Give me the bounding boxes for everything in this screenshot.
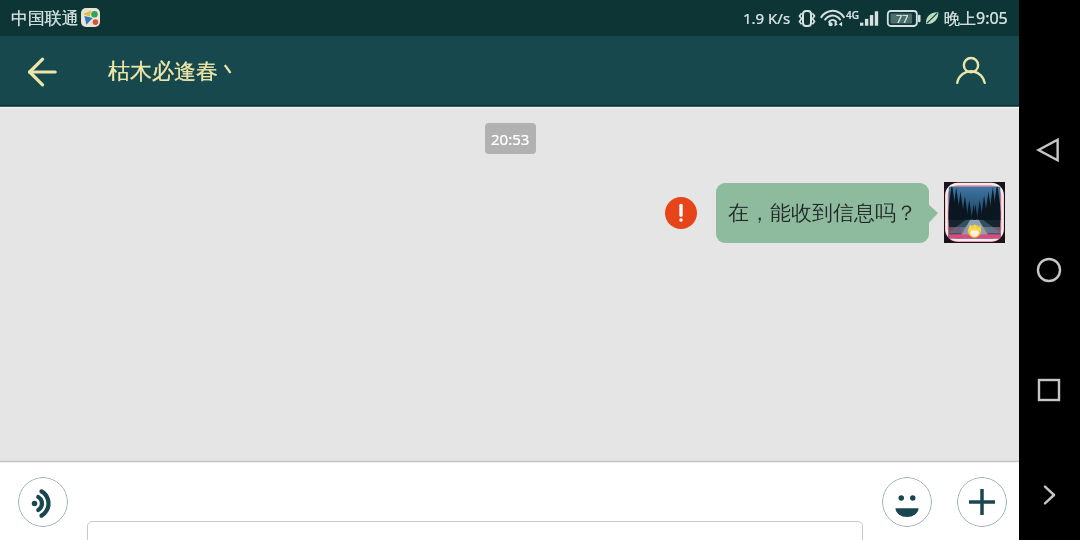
button[interactable]: Back [1027, 128, 1071, 172]
button[interactable]: Back [8, 36, 76, 107]
button[interactable]: Emoji [882, 477, 932, 527]
staticText: 枯木必逢春丶 [108, 58, 240, 86]
button[interactable]: Voice message [18, 477, 68, 527]
staticText: 晚上9:05 [944, 7, 1008, 29]
button[interactable]: Home [1027, 248, 1071, 292]
staticText: 4G [846, 8, 859, 22]
button[interactable]: Chat info [939, 40, 1003, 104]
button[interactable]: Recents [1027, 368, 1071, 412]
button[interactable]: Message input [87, 521, 863, 540]
button[interactable]: Expand navigation bar [1027, 473, 1071, 517]
button[interactable]: More [957, 477, 1007, 527]
staticText: 77 [896, 11, 909, 26]
staticText: 1.9 K/s [743, 8, 791, 28]
staticText: 中国联通 [11, 8, 79, 29]
button[interactable]: 在，能收到信息吗？ [716, 183, 929, 243]
staticText: 在，能收到信息吗？ [728, 200, 917, 226]
staticText: 20:53 [491, 129, 530, 149]
button[interactable]: Profile picture [944, 182, 1005, 243]
